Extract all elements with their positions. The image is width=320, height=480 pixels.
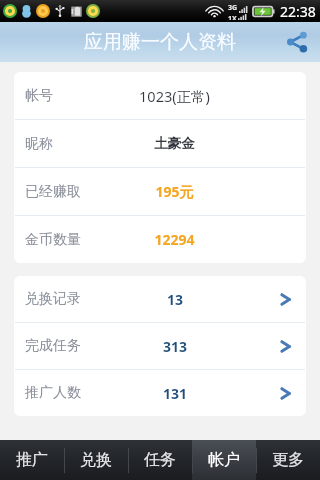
staticText: 1023(正常) [101,86,248,106]
button[interactable]: 推广人数 [14,370,306,416]
staticText: 帐号 [25,87,101,105]
staticText: 任务 [144,450,176,470]
button[interactable]: 昵称 [14,120,306,167]
button[interactable]: 任务 [128,440,192,480]
button[interactable]: 更多 [256,440,320,480]
button[interactable]: 帐户 [192,440,256,480]
staticText: 昵称 [25,135,101,153]
button[interactable]: 已经赚取 [14,168,306,215]
staticText: 完成任务 [25,337,101,355]
button[interactable]: 帐号 [14,72,306,119]
staticText: 金币数量 [25,231,101,249]
staticText: 帐户 [208,450,240,470]
staticText: 更多 [272,450,304,470]
staticText: 131 [101,384,249,403]
staticText: 195元 [101,182,248,201]
staticText: 应用赚一个人资料 [84,30,236,54]
button[interactable]: 完成任务 [14,323,306,369]
staticText: 313 [101,337,249,356]
staticText: 土豪金 [101,135,248,152]
staticText: 推广人数 [25,384,101,402]
staticText: 兑换记录 [25,290,101,308]
button[interactable]: 金币数量 [14,216,306,263]
staticText: 已经赚取 [25,183,101,201]
button[interactable]: 兑换记录 [14,276,306,322]
button[interactable]: Share [282,27,312,57]
staticText: 22:38 [280,2,316,21]
button[interactable]: 推广 [0,440,64,480]
staticText: 兑换 [80,450,112,470]
staticText: 12294 [101,230,248,249]
staticText: 13 [101,290,249,309]
staticText: 1X [228,14,237,20]
staticText: 推广 [16,450,48,470]
button[interactable]: 兑换 [64,440,128,480]
staticText: 3G [228,3,238,13]
